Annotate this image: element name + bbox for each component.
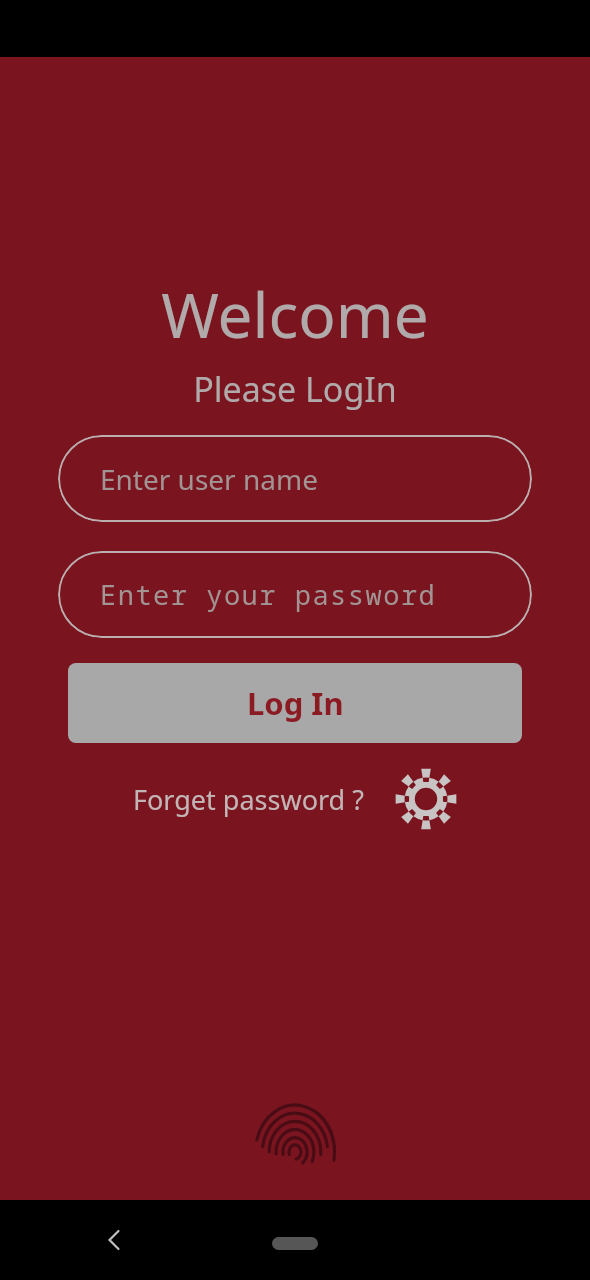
staticText: Enter user name [100,460,318,498]
button[interactable]: Enter your password [58,551,532,638]
button[interactable]: Home [272,1237,318,1250]
button[interactable]: Settings [394,767,458,831]
button[interactable]: Back [88,1214,140,1266]
staticText: Forget password ? [133,781,364,818]
staticText: Log In [247,682,344,724]
button[interactable]: Forget password ? [133,781,364,818]
button[interactable]: Enter user name [58,435,532,522]
staticText: Welcome [161,272,429,356]
button[interactable]: Fingerprint login [252,1100,338,1200]
button[interactable]: Log In [68,663,522,743]
staticText: Please LogIn [193,366,397,412]
staticText: Enter your password [100,576,437,613]
